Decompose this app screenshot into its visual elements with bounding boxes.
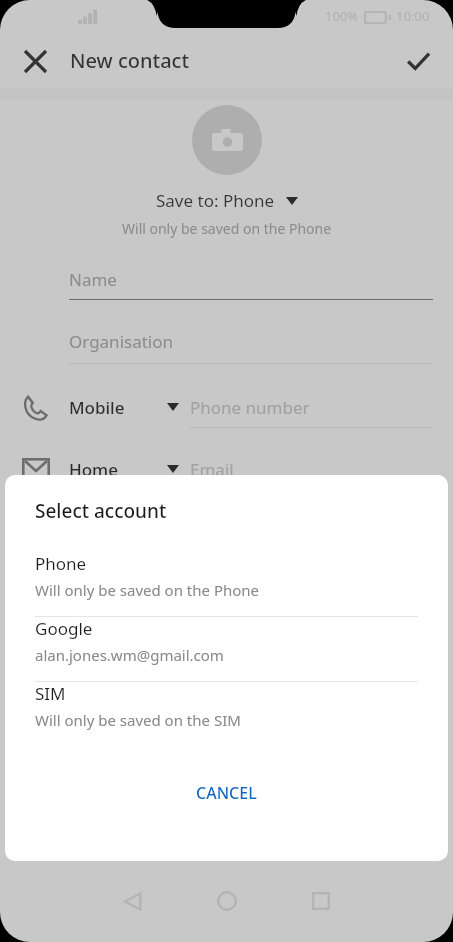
staticText: Will only be saved on the Phone <box>35 580 260 600</box>
staticText: Google <box>35 617 93 640</box>
button[interactable]: Name <box>0 258 453 318</box>
button[interactable]: Mobile <box>0 382 453 444</box>
button[interactable]: Organisation <box>0 320 453 382</box>
staticText: Name <box>69 268 117 291</box>
button[interactable]: Save to: Phone <box>156 189 298 212</box>
staticText: Home <box>69 458 118 481</box>
staticText: Phone number <box>190 396 310 419</box>
button[interactable]: Phone <box>5 552 448 616</box>
button[interactable]: Close <box>13 39 57 83</box>
staticText: Mobile <box>69 396 125 419</box>
staticText: CANCEL <box>196 782 257 804</box>
staticText: Select account <box>35 498 167 524</box>
button[interactable]: Home <box>193 867 261 935</box>
staticText: Will only be saved on the Phone <box>122 219 332 238</box>
staticText: Phone <box>35 552 87 575</box>
staticText: Save to: Phone <box>156 189 275 212</box>
staticText: 100% <box>325 7 359 25</box>
button[interactable]: Google <box>5 617 448 681</box>
staticText: alan.jones.wm@gmail.com <box>35 645 224 665</box>
staticText: Will only be saved on the SIM <box>35 710 241 730</box>
button[interactable]: Save <box>396 39 440 83</box>
button[interactable]: SIM <box>5 682 448 746</box>
staticText: Email <box>190 458 234 481</box>
button[interactable]: Add photo <box>192 105 262 175</box>
staticText: New contact <box>70 47 190 74</box>
button[interactable]: Home <box>0 444 453 506</box>
staticText: 10:00 <box>396 7 430 25</box>
staticText: Organisation <box>69 330 174 353</box>
staticText: SIM <box>35 682 66 705</box>
button[interactable]: Recent apps <box>287 867 355 935</box>
button[interactable]: CANCEL <box>176 774 277 812</box>
